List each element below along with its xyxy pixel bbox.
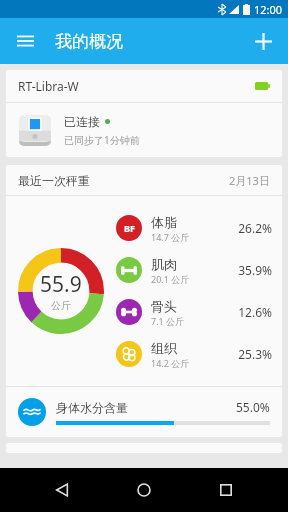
button[interactable]: 身体水分含量: [6, 387, 282, 437]
staticText: 我的概况: [55, 31, 123, 52]
button[interactable]: Home: [124, 470, 164, 510]
button[interactable]: Recents: [206, 470, 246, 510]
staticText: 身体水分含量: [56, 400, 236, 415]
staticText: 12.6%: [238, 304, 272, 320]
staticText: BF: [124, 222, 135, 234]
staticText: 2月13日: [229, 173, 270, 188]
staticText: 55.9: [40, 270, 82, 299]
button[interactable]: BF: [116, 207, 272, 249]
button[interactable]: 骨头: [116, 291, 272, 333]
button[interactable]: Menu: [8, 24, 42, 58]
staticText: RT-Libra-W: [18, 78, 79, 94]
button[interactable]: Add: [246, 24, 280, 58]
staticText: 体脂: [151, 214, 177, 230]
staticText: 26.2%: [238, 220, 272, 236]
staticText: 55.0%: [236, 399, 270, 415]
staticText: 骨头: [151, 298, 177, 314]
staticText: 组织: [151, 340, 177, 356]
staticText: 12:00: [254, 2, 283, 17]
button[interactable]: RT-Libra-W: [6, 70, 282, 157]
staticText: 7.1 公斤: [151, 315, 185, 327]
staticText: 35.9%: [238, 262, 272, 278]
button[interactable]: Back: [42, 470, 82, 510]
staticText: 14.2 公斤: [151, 357, 190, 369]
staticText: 20.1 公斤: [151, 273, 190, 285]
staticText: 已同步了1分钟前: [64, 133, 140, 147]
staticText: 最近一次秤重: [18, 173, 90, 188]
staticText: 25.3%: [238, 346, 272, 362]
staticText: 已连接: [64, 114, 100, 129]
button[interactable]: 肌肉: [116, 249, 272, 291]
button[interactable]: 组织: [116, 333, 272, 375]
staticText: 肌肉: [151, 256, 177, 272]
staticText: 公斤: [51, 299, 71, 312]
staticText: 14.7 公斤: [151, 231, 190, 243]
